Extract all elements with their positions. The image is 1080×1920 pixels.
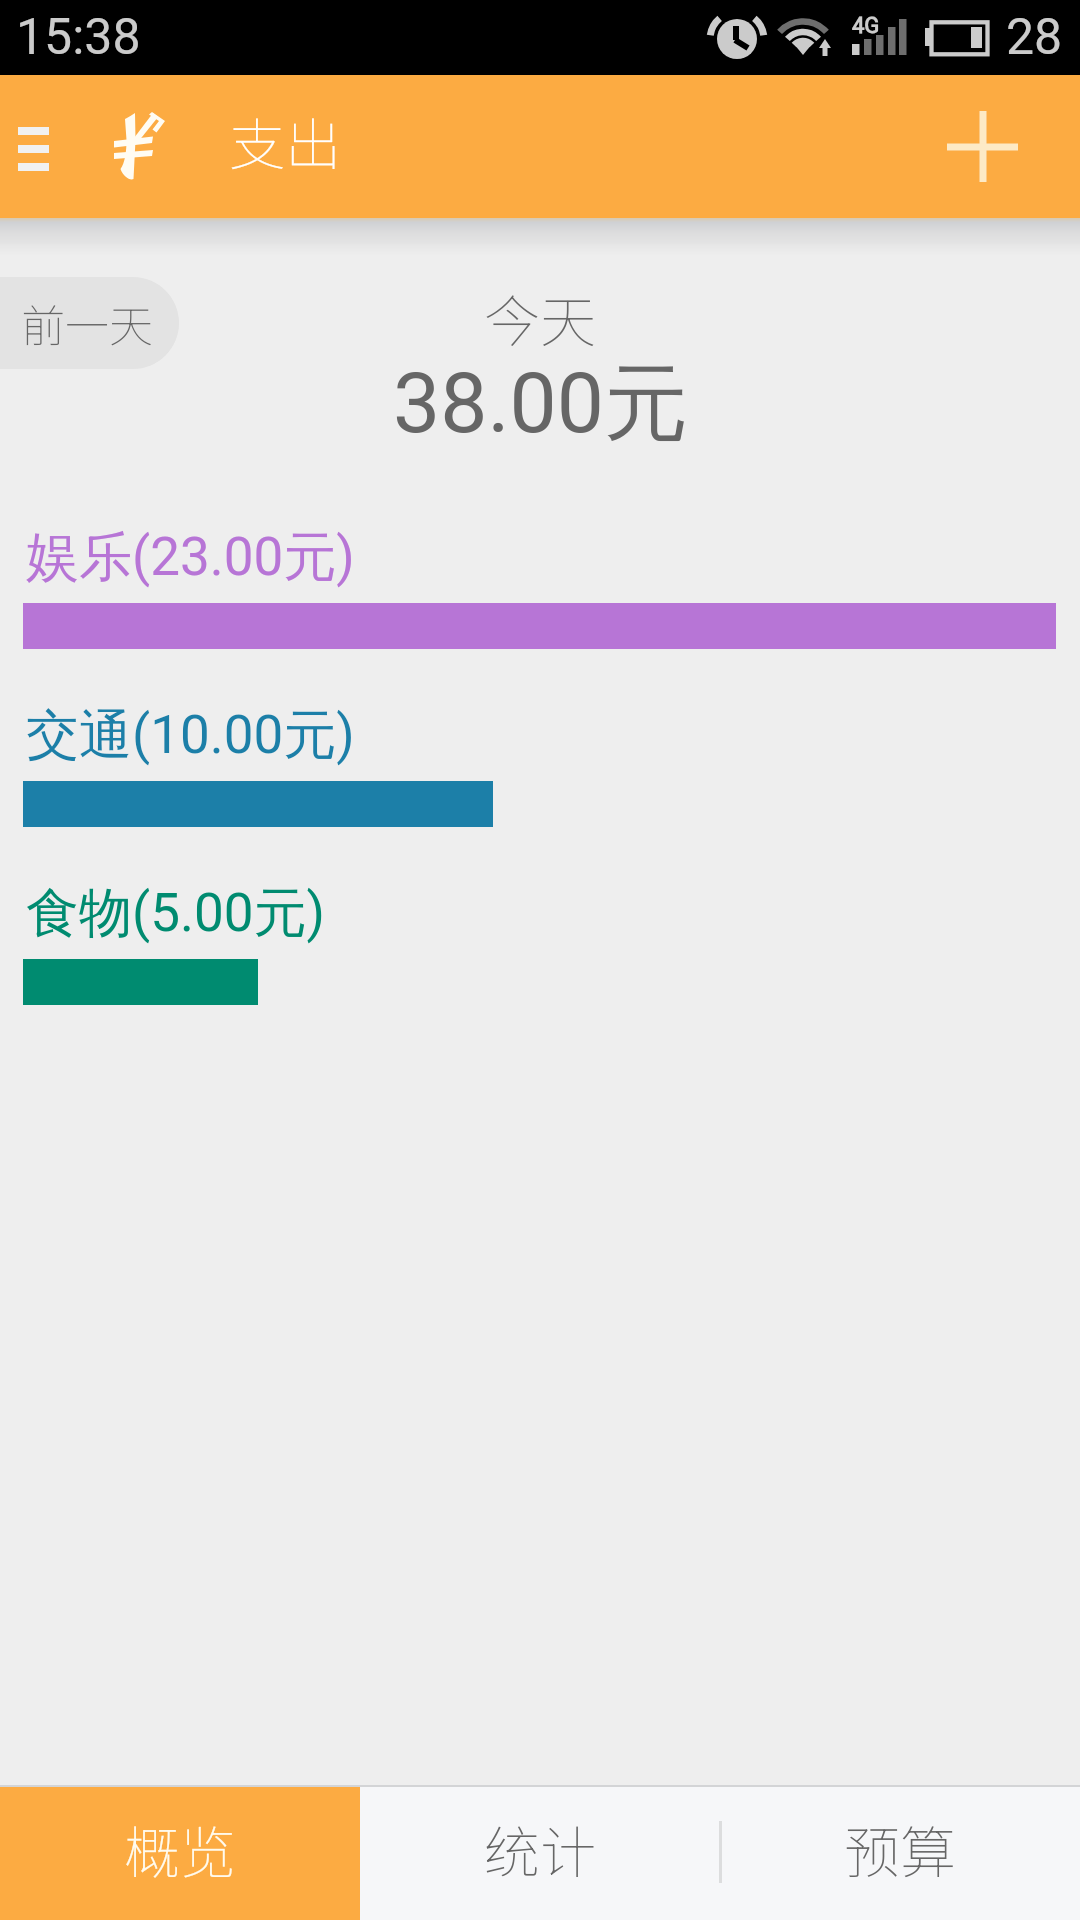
button[interactable]: 娱乐(23.00元) xyxy=(0,510,1080,660)
staticText: 统计 xyxy=(484,1808,596,1889)
button[interactable]: 食物(5.00元) xyxy=(0,866,1080,1016)
staticText: 4G xyxy=(852,13,880,39)
button[interactable]: Open navigation menu xyxy=(0,75,82,218)
staticText: 38.00元 xyxy=(393,351,688,457)
staticText: 概览 xyxy=(124,1808,236,1889)
staticText: 28 xyxy=(1006,8,1063,67)
staticText: 食物(5.00元) xyxy=(26,880,325,947)
button[interactable]: 前一天 xyxy=(0,277,179,369)
staticText: 今天 xyxy=(484,277,596,358)
staticText: 预算 xyxy=(844,1808,956,1889)
button[interactable]: 概览 xyxy=(0,1785,360,1920)
button[interactable]: Add expense xyxy=(908,75,1058,218)
staticText: 交通(10.00元) xyxy=(26,702,355,769)
button[interactable]: 统计 xyxy=(360,1785,720,1920)
staticText: 15:38 xyxy=(16,8,141,67)
button[interactable]: 交通(10.00元) xyxy=(0,688,1080,838)
staticText: 娱乐(23.00元) xyxy=(26,524,355,591)
button[interactable]: 预算 xyxy=(720,1785,1080,1920)
staticText: 支出 xyxy=(229,100,341,181)
staticText: 前一天 xyxy=(21,291,153,355)
